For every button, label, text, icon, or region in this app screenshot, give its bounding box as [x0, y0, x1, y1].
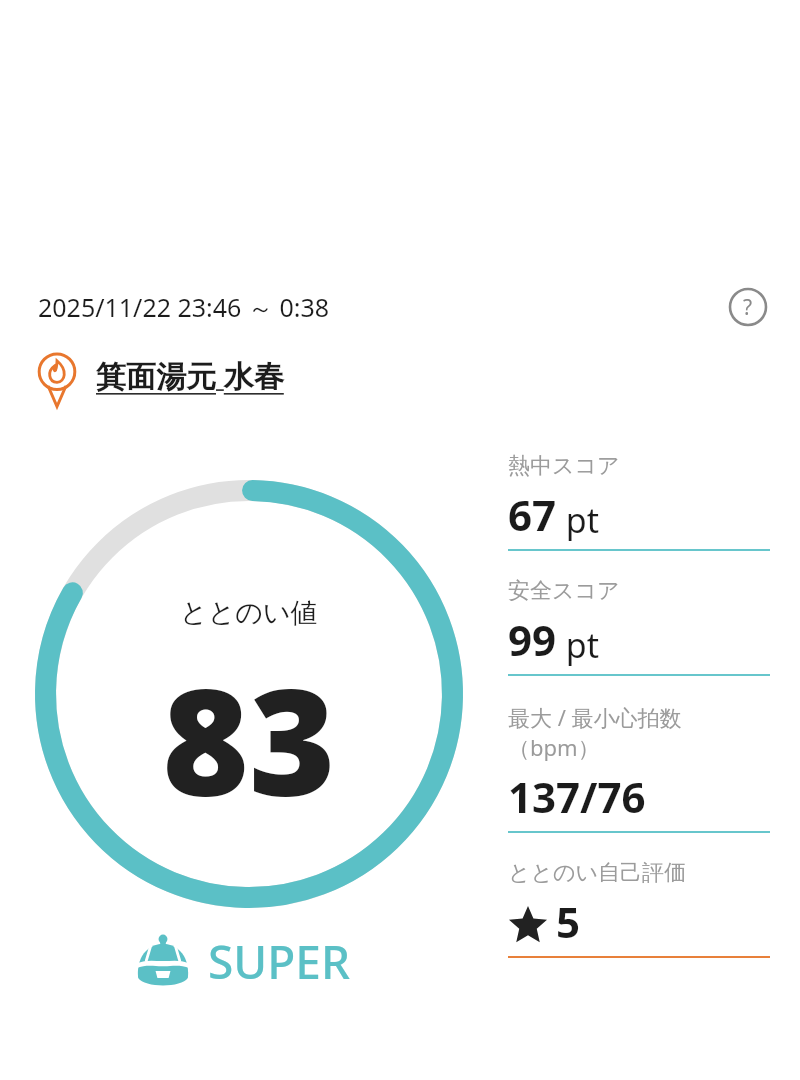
button[interactable]: SUPER — [132, 930, 351, 993]
staticText: 67 — [508, 486, 557, 543]
staticText: ととのい自己評価 — [508, 859, 687, 887]
staticText: SUPER — [208, 930, 351, 993]
staticText: 箕面湯元 水春 — [96, 355, 284, 396]
staticText: 2025/11/22 23:46 ～ 0:38 — [38, 290, 330, 324]
button[interactable]: ととのい自己評価 — [508, 859, 770, 958]
staticText: 137/76 — [508, 768, 646, 825]
staticText: pt — [557, 497, 600, 543]
button[interactable]: 安全スコア — [508, 577, 770, 676]
staticText: 99 — [508, 611, 557, 668]
staticText: pt — [557, 622, 600, 668]
staticText: 最大 / 最小心拍数 — [508, 702, 682, 732]
button[interactable]: 熱中スコア — [508, 452, 770, 551]
staticText: 5 — [556, 893, 581, 950]
staticText: 熱中スコア — [508, 452, 620, 480]
button[interactable]: Help — [726, 285, 770, 329]
staticText: 83 — [162, 638, 336, 840]
staticText: 安全スコア — [508, 577, 620, 605]
button[interactable]: 最大 / 最小心拍数 — [508, 702, 770, 833]
staticText: ととのい値 — [180, 596, 318, 630]
staticText: ? — [743, 293, 753, 322]
button[interactable]: 箕面湯元 水春 — [30, 348, 284, 402]
staticText: （bpm） — [508, 732, 600, 762]
